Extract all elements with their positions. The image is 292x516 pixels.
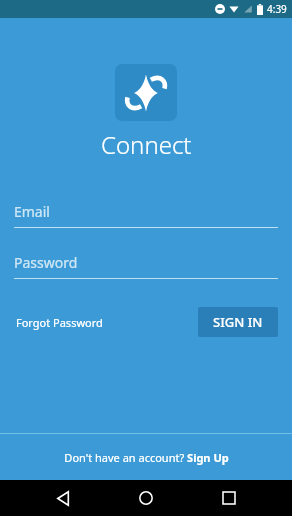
button[interactable]: Back bbox=[43, 480, 83, 516]
staticText: Forgot Password bbox=[16, 315, 103, 330]
button[interactable]: Recent apps bbox=[209, 480, 249, 516]
button[interactable]: Forgot Password bbox=[14, 309, 105, 336]
staticText: Connect bbox=[101, 128, 192, 161]
staticText: Don't have an account? Sign Up bbox=[64, 450, 229, 465]
button[interactable]: Don't have an account? Sign Up bbox=[0, 434, 292, 480]
staticText: SIGN IN bbox=[213, 313, 263, 331]
button[interactable]: Home bbox=[126, 480, 166, 516]
staticText: Password bbox=[14, 253, 78, 272]
staticText: 4:39 bbox=[267, 2, 287, 16]
staticText: Email bbox=[14, 202, 50, 221]
button[interactable]: SIGN IN bbox=[198, 307, 278, 337]
